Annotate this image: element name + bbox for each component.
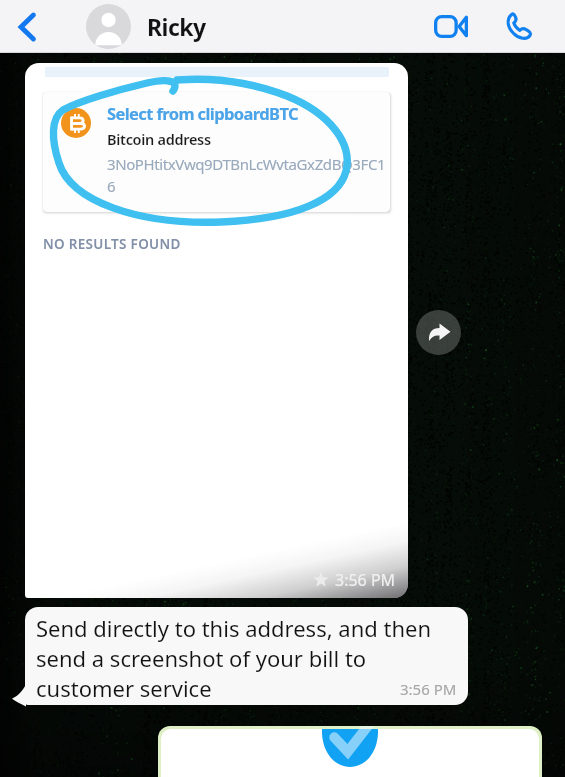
staticText: NO RESULTS FOUND [43, 235, 181, 253]
button[interactable] [158, 726, 542, 777]
button[interactable]: Back [0, 0, 56, 53]
staticText: Select from clipboardBTC [107, 102, 299, 124]
button[interactable]: Send directly to this address, and then … [25, 607, 468, 705]
button[interactable]: Select from clipboardBTC [43, 92, 390, 212]
staticText: Send directly to this address, and then … [36, 613, 432, 703]
staticText: 3NoPHtitxVwq9DTBnLcWvtaGxZdBQ3FC1 6 [107, 154, 386, 197]
button[interactable]: Video call [423, 0, 479, 53]
button[interactable]: Forward [416, 310, 461, 355]
staticText: Ricky [147, 11, 206, 42]
staticText: Bitcoin address [107, 129, 211, 149]
button[interactable]: Select from clipboardBTC [25, 63, 408, 598]
staticText: 3:56 PM [400, 679, 457, 699]
button[interactable]: Call [490, 0, 546, 53]
staticText: 3:56 PM [335, 569, 396, 591]
button[interactable]: Ricky [86, 4, 206, 49]
